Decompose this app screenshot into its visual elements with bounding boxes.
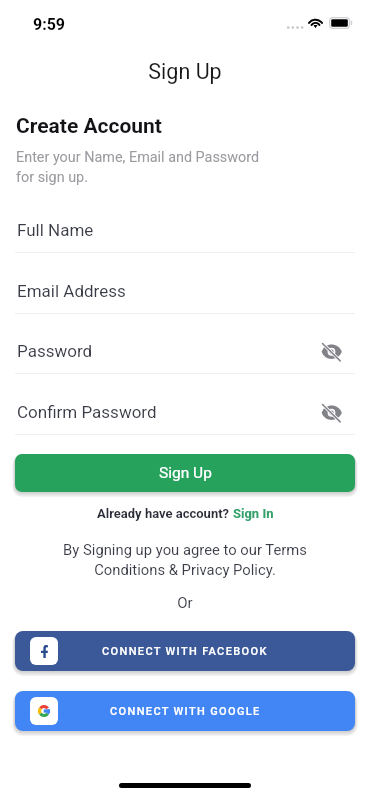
- staticText: Sign Up: [159, 464, 212, 482]
- staticText: Create Account: [16, 114, 162, 139]
- button[interactable]: Sign Up: [15, 454, 355, 492]
- button[interactable]: CONNECT WITH GOOGLE: [15, 691, 355, 731]
- staticText: Already have account?: [97, 506, 233, 521]
- staticText: CONNECT WITH FACEBOOK: [102, 645, 268, 658]
- button[interactable]: Sign In: [233, 506, 274, 521]
- staticText: By Signing up you agree to our Terms: [0, 541, 370, 558]
- button[interactable]: Email Address: [15, 271, 355, 313]
- staticText: 9:59: [33, 15, 66, 34]
- staticText: Confirm Password: [17, 402, 157, 422]
- staticText: Sign Up: [0, 59, 370, 84]
- button[interactable]: Password: [15, 331, 355, 373]
- staticText: Email Address: [17, 281, 126, 301]
- staticText: for sign up.: [16, 169, 88, 186]
- button[interactable]: Show password: [314, 337, 348, 367]
- staticText: Password: [17, 341, 93, 361]
- staticText: Full Name: [17, 220, 94, 240]
- staticText: Or: [0, 594, 370, 612]
- staticText: Conditions & Privacy Policy.: [0, 561, 370, 578]
- button[interactable]: Show password: [314, 398, 348, 428]
- button[interactable]: Confirm Password: [15, 392, 355, 434]
- button[interactable]: Full Name: [15, 210, 355, 252]
- staticText: Enter your Name, Email and Password: [16, 149, 260, 166]
- button[interactable]: CONNECT WITH FACEBOOK: [15, 631, 355, 671]
- staticText: Sign In: [233, 506, 274, 521]
- staticText: CONNECT WITH GOOGLE: [110, 705, 261, 718]
